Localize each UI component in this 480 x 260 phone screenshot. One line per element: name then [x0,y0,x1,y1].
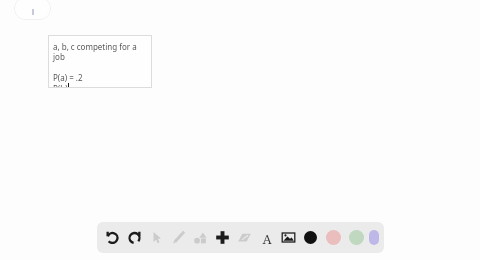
button[interactable]: Black colour [300,223,321,252]
button[interactable]: Eraser [234,223,254,252]
staticText: P(a) = .2 [53,72,83,83]
staticText: A [262,230,272,245]
button[interactable]: Select [146,223,166,252]
button[interactable]: Redo [124,223,144,252]
button[interactable]: Insert image [278,223,298,252]
staticText: a, b, c competing for a job [53,41,148,62]
button[interactable]: Text [256,223,276,252]
button[interactable]: Add [212,223,232,252]
button[interactable]: Pink colour [323,223,344,252]
button[interactable]: Shapes [190,223,210,252]
button[interactable]: Draw [168,223,188,252]
button[interactable]: Menu [14,0,51,20]
button[interactable]: Undo [102,223,122,252]
button[interactable]: Purple colour [369,223,379,252]
staticText: P(b) [53,83,68,88]
button[interactable]: a, b, c competing for a job [48,35,152,88]
button[interactable]: Green colour [346,223,367,252]
